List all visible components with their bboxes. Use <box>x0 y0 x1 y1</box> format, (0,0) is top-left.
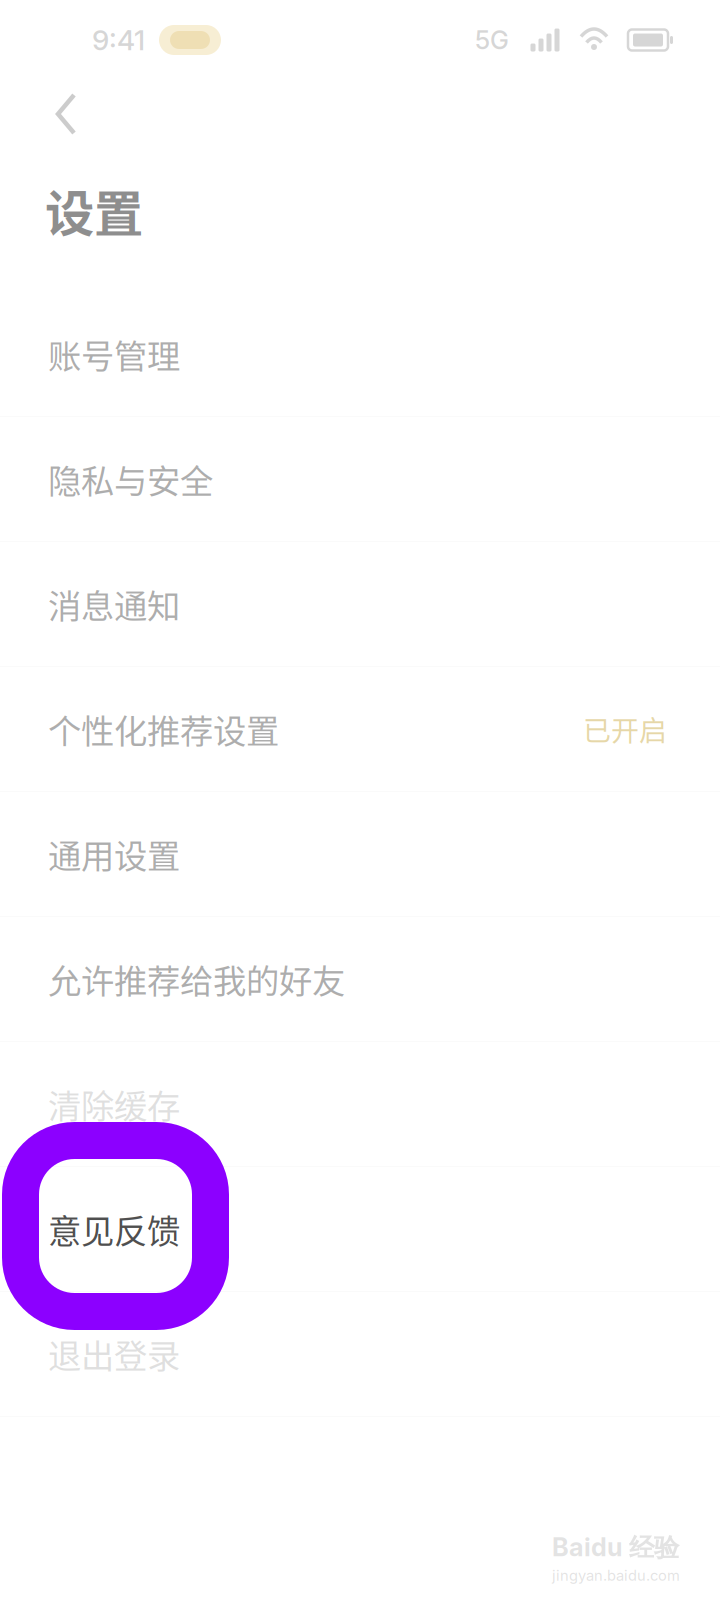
staticText: 意见反馈 <box>48 1205 180 1253</box>
button[interactable]: 允许推荐给我的好友 <box>0 917 720 1042</box>
staticText: 个性化推荐设置 <box>48 705 279 753</box>
button[interactable]: Back <box>0 76 130 152</box>
staticText: 账号管理 <box>48 330 180 378</box>
staticText: 设置 <box>45 174 143 246</box>
staticText: 已开启 <box>583 709 667 749</box>
button[interactable]: 消息通知 <box>0 542 720 667</box>
staticText: 9:41 <box>92 23 145 57</box>
staticText: 5G <box>475 25 509 55</box>
staticText: 消息通知 <box>48 580 180 628</box>
staticText: 退出登录 <box>48 1330 180 1378</box>
staticText: Baidu 经验 <box>552 1532 679 1564</box>
button[interactable]: 清除缓存 <box>0 1042 720 1167</box>
button[interactable]: 账号管理 <box>0 292 720 417</box>
staticText: jingyan.baidu.com <box>552 1567 680 1584</box>
button[interactable]: 隐私与安全 <box>0 417 720 542</box>
button[interactable]: 通用设置 <box>0 792 720 917</box>
button[interactable]: 意见反馈 <box>0 1167 720 1292</box>
staticText: 隐私与安全 <box>48 455 213 503</box>
button[interactable]: 退出登录 <box>0 1292 720 1417</box>
staticText: 清除缓存 <box>48 1080 180 1128</box>
staticText: 允许推荐给我的好友 <box>48 955 345 1003</box>
staticText: 通用设置 <box>48 830 180 878</box>
button[interactable]: 个性化推荐设置 <box>0 667 720 792</box>
